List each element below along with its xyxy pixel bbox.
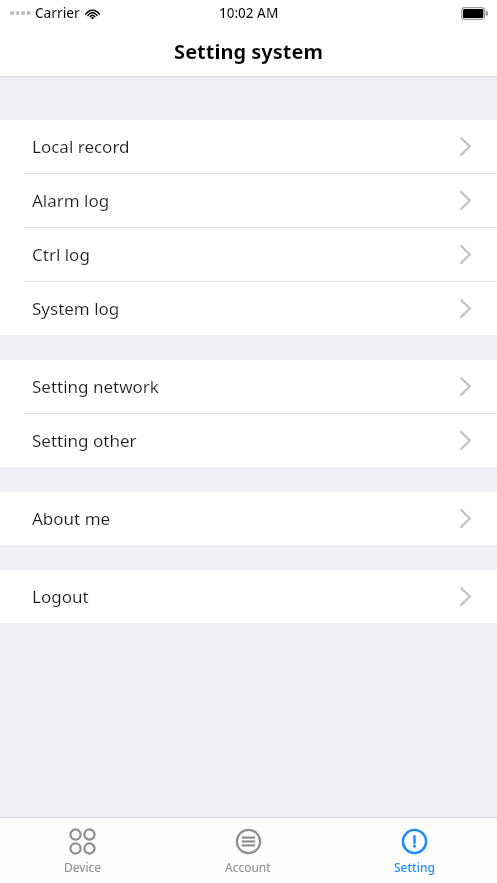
- button[interactable]: Ctrl log: [0, 228, 497, 281]
- staticText: Local record: [32, 135, 130, 158]
- staticText: Setting network: [32, 375, 159, 398]
- button[interactable]: Setting other: [0, 414, 497, 467]
- button[interactable]: Logout: [0, 570, 497, 623]
- button[interactable]: System log: [0, 282, 497, 335]
- button[interactable]: Setting: [331, 818, 497, 883]
- staticText: Device: [64, 859, 102, 875]
- staticText: 10:02 AM: [219, 4, 279, 22]
- staticText: Setting system: [174, 38, 323, 65]
- staticText: System log: [32, 297, 120, 320]
- button[interactable]: Setting network: [0, 360, 497, 413]
- button[interactable]: Alarm log: [0, 174, 497, 227]
- staticText: Ctrl log: [32, 243, 90, 266]
- staticText: Alarm log: [32, 189, 110, 212]
- staticText: Setting: [394, 859, 435, 875]
- button[interactable]: About me: [0, 492, 497, 545]
- button[interactable]: Device: [0, 818, 165, 883]
- button[interactable]: Local record: [0, 120, 497, 173]
- staticText: Account: [225, 859, 271, 875]
- staticText: Setting other: [32, 429, 137, 452]
- staticText: About me: [32, 507, 111, 530]
- staticText: Carrier: [35, 4, 80, 22]
- staticText: Logout: [32, 585, 89, 608]
- button[interactable]: Account: [165, 818, 331, 883]
